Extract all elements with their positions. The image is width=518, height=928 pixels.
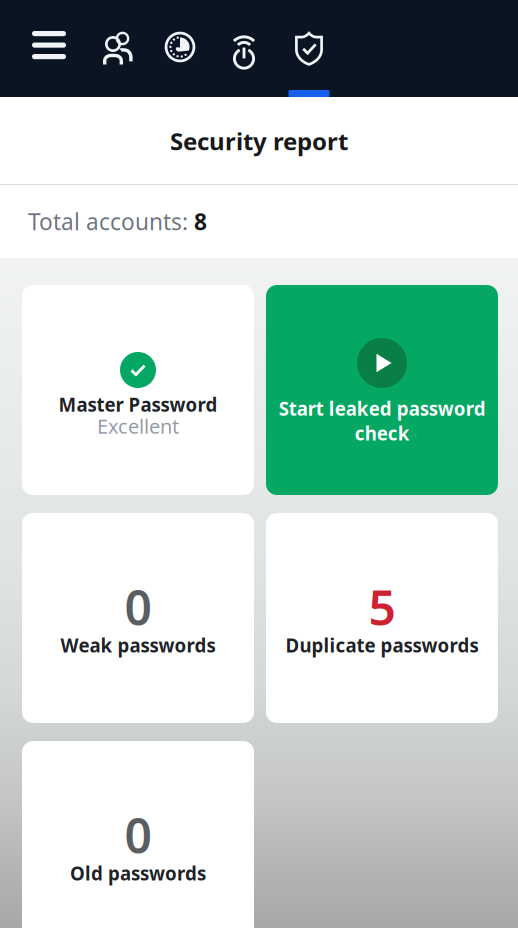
button[interactable]: Master Password [22,285,254,495]
button[interactable]: Privacy [149,0,211,97]
staticText: Master Password [58,392,217,417]
button[interactable]: 0 [22,741,254,928]
staticText: Weak passwords [60,633,215,657]
button[interactable]: Start leaked password check [266,285,498,495]
button[interactable]: Identity [87,0,149,97]
button[interactable]: 0 [22,513,254,723]
staticText: 8 [194,206,207,236]
button[interactable]: VPN [213,0,275,97]
button[interactable]: Menu [18,0,80,97]
staticText: Old passwords [70,861,206,885]
staticText: 0 [124,803,151,867]
staticText: 5 [368,575,395,639]
staticText: Duplicate passwords [285,633,478,657]
staticText: Total accounts: [28,206,194,236]
staticText: Excellent [97,413,179,439]
button[interactable]: 5 [266,513,498,723]
button[interactable]: Security [278,0,340,97]
staticText: Start leaked password check [278,396,485,446]
staticText: 0 [124,575,151,639]
staticText: Security report [170,125,348,157]
